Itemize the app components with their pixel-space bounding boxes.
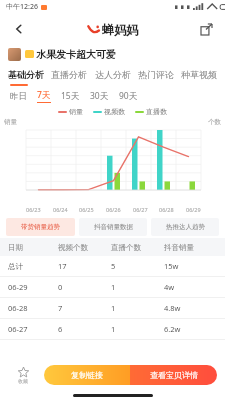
staticText: 06-28 <box>8 303 28 313</box>
staticText: 抖音销量 <box>164 243 194 252</box>
staticText: 水果发卡超大可爱 <box>36 48 116 61</box>
button[interactable]: 收藏 <box>8 367 38 384</box>
staticText: 30天 <box>90 90 109 102</box>
staticText: 1 <box>111 303 116 313</box>
staticText: 06/26 <box>106 206 121 213</box>
staticText: 蝉妈妈 <box>102 22 138 37</box>
staticText: 热门评论 <box>138 69 174 80</box>
button[interactable]: 热推达人趋势 <box>151 218 219 236</box>
staticText: 日期 <box>8 243 23 252</box>
staticText: 直播数 <box>146 107 167 116</box>
staticText: 中午12:26 <box>6 2 38 12</box>
button[interactable]: 种草视频 <box>179 69 219 80</box>
staticText: 7 <box>58 303 63 313</box>
button[interactable]: 直播分析 <box>49 69 89 80</box>
button[interactable]: 热门评论 <box>136 69 176 80</box>
staticText: 15天 <box>61 90 80 102</box>
button[interactable]: 7天 <box>37 89 51 103</box>
staticText: 基础分析 <box>8 69 44 80</box>
staticText: 直播分析 <box>51 69 87 80</box>
button[interactable]: 30天 <box>90 90 109 102</box>
staticText: 06-27 <box>8 324 28 334</box>
staticText: 17 <box>58 261 67 271</box>
staticText: 个数 <box>208 118 221 126</box>
staticText: 4.8w <box>164 303 181 313</box>
button[interactable]: 90天 <box>119 90 138 102</box>
button[interactable]: Back <box>8 18 30 40</box>
staticText: 种草视频 <box>181 69 217 80</box>
staticText: 90天 <box>119 90 138 102</box>
staticText: 4w <box>164 282 175 292</box>
staticText: 视频个数 <box>58 243 88 252</box>
staticText: 热推达人趋势 <box>166 223 205 231</box>
staticText: 7天 <box>37 89 51 101</box>
staticText: 6 <box>58 324 63 334</box>
staticText: 15w <box>164 261 179 271</box>
staticText: 直播个数 <box>111 243 141 252</box>
staticText: 销量 <box>4 118 17 126</box>
staticText: 查看宝贝详情 <box>150 370 198 380</box>
button[interactable]: 昨日 <box>10 91 27 102</box>
staticText: 收藏 <box>18 378 28 384</box>
staticText: 达人分析 <box>95 69 131 80</box>
staticText: 1 <box>111 282 116 292</box>
button[interactable]: 达人分析 <box>93 69 133 80</box>
button[interactable]: Share <box>195 18 217 40</box>
staticText: 06/29 <box>186 206 201 213</box>
staticText: 06-29 <box>8 282 28 292</box>
button[interactable]: 15天 <box>61 90 80 102</box>
button[interactable]: 复制链接 <box>44 365 130 385</box>
staticText: 昨日 <box>10 91 27 102</box>
staticText: 06/25 <box>79 206 94 213</box>
staticText: 6.2w <box>164 324 181 334</box>
staticText: 视频数 <box>104 107 125 116</box>
staticText: 总计 <box>8 262 23 271</box>
staticText: 0 <box>58 282 63 292</box>
staticText: 1 <box>111 324 116 334</box>
staticText: 销量 <box>69 107 83 116</box>
button[interactable]: 带货销量趋势 <box>6 218 75 236</box>
staticText: 5 <box>111 261 116 271</box>
staticText: 06/24 <box>53 206 68 213</box>
button[interactable]: 基础分析 <box>6 69 46 80</box>
staticText: 06/28 <box>159 206 174 213</box>
button[interactable]: 查看宝贝详情 <box>130 365 217 385</box>
button[interactable]: 抖音销量数据 <box>79 218 147 236</box>
staticText: 06/27 <box>133 206 148 213</box>
staticText: 抖音销量数据 <box>94 223 133 231</box>
staticText: 复制链接 <box>71 370 103 380</box>
staticText: 带货销量趋势 <box>21 223 60 231</box>
staticText: 06/23 <box>26 206 41 213</box>
